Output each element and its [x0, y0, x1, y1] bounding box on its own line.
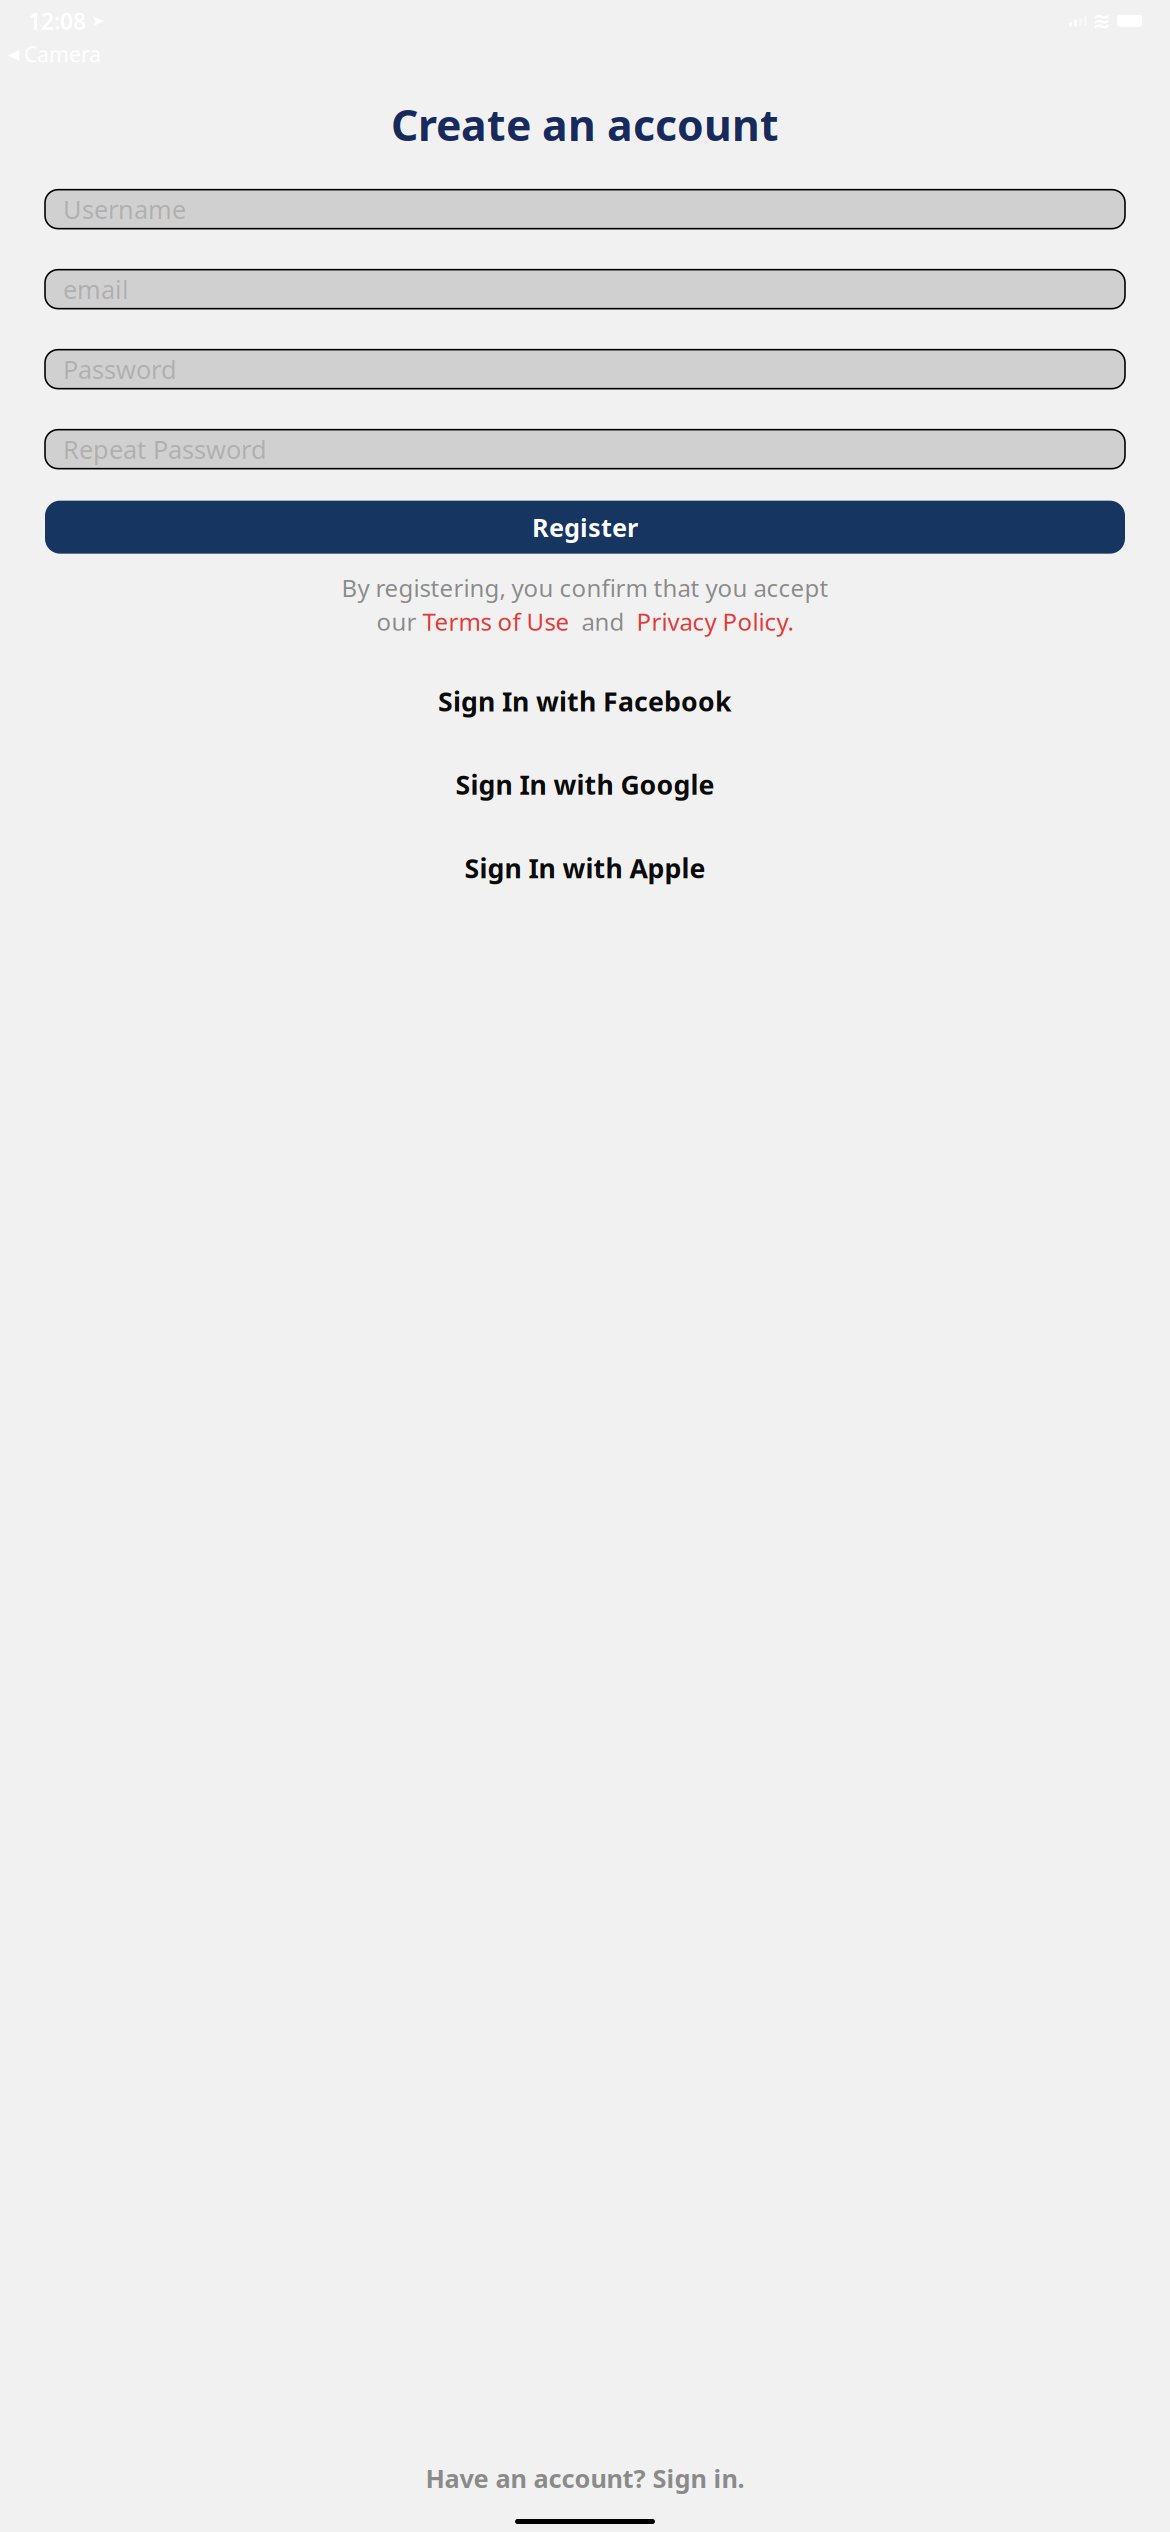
button[interactable]: Repeat Password [0, 430, 1170, 469]
staticText: 12:08 [28, 6, 86, 36]
staticText: Sign In with Facebook [438, 683, 732, 719]
staticText: Repeat Password [63, 432, 267, 466]
staticText: Sign In with Apple [464, 850, 705, 886]
button[interactable]: Privacy Policy. [636, 605, 793, 637]
staticText: email [63, 272, 129, 306]
staticText: our [376, 605, 422, 637]
staticText: Sign In with Google [455, 767, 714, 802]
staticText: ◀ [8, 46, 19, 62]
button[interactable]: Sign In with Google [0, 757, 1170, 812]
button[interactable]: email [0, 270, 1170, 309]
staticText: Camera [24, 40, 101, 68]
button[interactable]: Terms of Use [422, 605, 569, 637]
button[interactable]: Sign In with Facebook [0, 673, 1170, 729]
staticText: Have an account? Sign in. [425, 2461, 744, 2495]
button[interactable]: Sign In with Apple [0, 840, 1170, 896]
staticText: Password [63, 352, 177, 386]
button[interactable]: Register [45, 501, 1125, 554]
staticText: Username [63, 192, 186, 226]
staticText: Create an account [391, 96, 779, 153]
button[interactable]: Have an account? Sign in. [0, 2455, 1170, 2501]
staticText: Terms of Use [422, 605, 569, 637]
staticText: Register [532, 510, 638, 544]
staticText: By registering, you confirm that you acc… [341, 572, 828, 604]
staticText: and [569, 605, 636, 637]
staticText: ≋ [1093, 9, 1111, 33]
button[interactable]: Username [0, 190, 1170, 229]
staticText: Privacy Policy. [636, 605, 793, 637]
button[interactable]: Password [0, 350, 1170, 389]
staticText: ➤ [91, 12, 104, 30]
